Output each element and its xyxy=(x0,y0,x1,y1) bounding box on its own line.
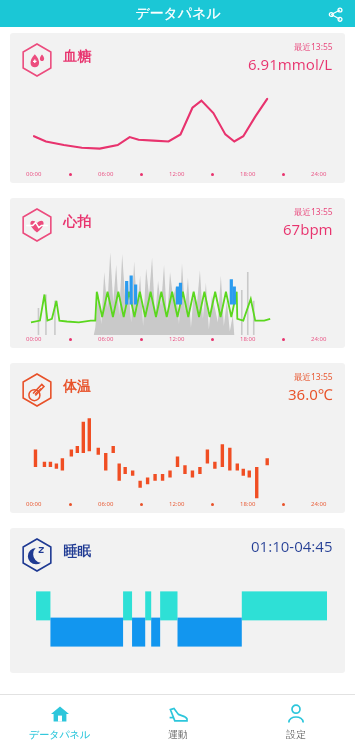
button[interactable]: データパネル xyxy=(0,698,119,747)
staticText: 6.91mmol/L xyxy=(248,54,333,74)
staticText: 00:00 xyxy=(26,500,42,508)
staticText: 36.0℃ xyxy=(288,384,333,404)
button[interactable]: 体温 xyxy=(10,363,345,513)
staticText: 24:00 xyxy=(311,335,327,343)
staticText: 血糖 xyxy=(63,48,91,66)
staticText: 18:00 xyxy=(240,500,256,508)
staticText: 最近13:55 xyxy=(294,41,333,53)
button[interactable]: 設定 xyxy=(237,698,355,747)
staticText: 06:00 xyxy=(98,335,114,343)
staticText: 心拍 xyxy=(63,213,91,231)
staticText: 00:00 xyxy=(26,335,42,343)
staticText: 00:00 xyxy=(26,170,42,178)
staticText: 12:00 xyxy=(169,335,185,343)
staticText: 設定 xyxy=(286,728,306,741)
staticText: 運動 xyxy=(168,728,188,741)
staticText: 24:00 xyxy=(311,500,327,508)
staticText: データパネル xyxy=(135,5,221,23)
button[interactable]: 心拍 xyxy=(10,198,345,348)
staticText: データパネル xyxy=(29,728,91,741)
button[interactable]: 血糖 xyxy=(10,33,345,183)
staticText: 06:00 xyxy=(98,500,114,508)
staticText: 67bpm xyxy=(283,219,333,239)
button[interactable]: Share xyxy=(323,2,347,26)
staticText: 睡眠 xyxy=(63,543,91,561)
staticText: 01:10-04:45 xyxy=(251,536,333,556)
staticText: 06:00 xyxy=(98,170,114,178)
staticText: 12:00 xyxy=(169,500,185,508)
staticText: 最近13:55 xyxy=(294,206,333,218)
button[interactable]: 睡眠 xyxy=(10,528,345,673)
staticText: 12:00 xyxy=(169,170,185,178)
button[interactable]: 運動 xyxy=(119,698,237,747)
staticText: 体温 xyxy=(63,378,91,396)
staticText: 24:00 xyxy=(311,170,327,178)
staticText: 18:00 xyxy=(240,335,256,343)
staticText: 18:00 xyxy=(240,170,256,178)
staticText: 最近13:55 xyxy=(294,371,333,383)
